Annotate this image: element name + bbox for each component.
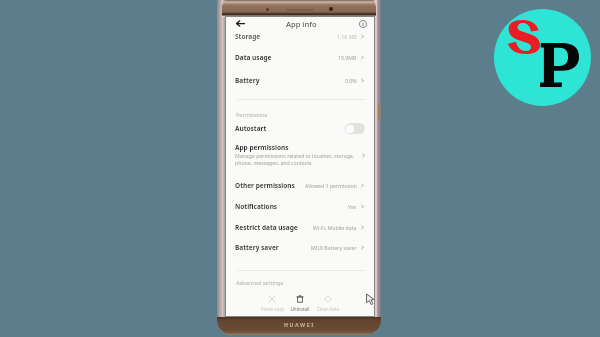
button[interactable]: Uninstall: [286, 294, 314, 313]
staticText: Manage permissions related to location, …: [235, 152, 355, 159]
button[interactable]: Notifications: [226, 197, 374, 215]
staticText: HUAWEI: [284, 321, 315, 328]
staticText: App permissions: [235, 143, 289, 152]
staticText: Uninstall: [290, 306, 310, 312]
staticText: phone, messages, and contacts: [235, 159, 312, 166]
button[interactable]: Battery: [226, 71, 374, 89]
button[interactable]: Storage: [226, 27, 374, 45]
staticText: 15.9MB: [338, 54, 357, 61]
staticText: Data usage: [235, 53, 272, 62]
staticText: Clear data: [317, 306, 339, 312]
staticText: 1.16 MB: [337, 33, 357, 40]
staticText: Other permissions: [235, 181, 295, 190]
staticText: Battery: [235, 76, 260, 85]
button[interactable]: Other permissions: [226, 176, 374, 194]
button[interactable]: Info: [356, 17, 369, 30]
staticText: Restrict data usage: [235, 223, 298, 232]
staticText: Yes: [348, 203, 357, 210]
button[interactable]: Back: [234, 17, 247, 30]
button[interactable]: App permissions: [226, 143, 374, 167]
staticText: Wi-Fi, Mobile data: [313, 224, 357, 231]
button[interactable]: Clear data: [314, 294, 342, 313]
button[interactable]: Data usage: [226, 48, 374, 66]
button[interactable]: Battery saver: [226, 238, 374, 256]
staticText: Permissions: [236, 111, 268, 118]
staticText: 0.0%: [345, 77, 357, 84]
staticText: Notifications: [235, 202, 278, 211]
staticText: Advanced settings: [236, 279, 284, 286]
staticText: Force stop: [261, 306, 284, 312]
staticText: Allowed 1 permission: [305, 182, 357, 189]
button[interactable]: Autostart: [226, 119, 374, 137]
staticText: Autostart: [235, 124, 267, 133]
button[interactable]: Force stop: [258, 294, 286, 313]
staticText: App info: [286, 19, 317, 29]
button[interactable]: Restrict data usage: [226, 218, 374, 236]
staticText: Battery saver: [235, 243, 279, 252]
staticText: Storage: [235, 32, 261, 41]
staticText: MIUI Battery saver: [311, 244, 357, 251]
